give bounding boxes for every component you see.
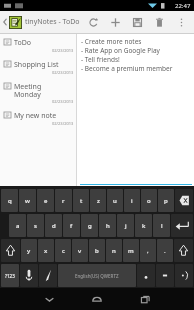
staticText: Shopping List bbox=[14, 60, 59, 70]
button[interactable]: n bbox=[106, 239, 122, 262]
staticText: a bbox=[16, 222, 20, 230]
staticText: ?123 bbox=[5, 273, 15, 279]
staticText: p bbox=[164, 197, 168, 205]
staticText: 02/23/2013 bbox=[52, 48, 74, 53]
button[interactable]: Key bbox=[174, 239, 193, 262]
staticText: s bbox=[34, 222, 37, 230]
button[interactable]: Key bbox=[137, 264, 155, 287]
staticText: l bbox=[161, 222, 163, 230]
staticText: z bbox=[97, 197, 100, 205]
button[interactable]: o bbox=[141, 189, 157, 212]
staticText: - Create more notes bbox=[81, 37, 142, 46]
staticText: y bbox=[27, 247, 31, 255]
staticText: w bbox=[25, 197, 30, 205]
staticText: c bbox=[62, 247, 65, 255]
button[interactable]: Meeting Monday bbox=[0, 78, 76, 107]
button[interactable]: w bbox=[19, 189, 36, 212]
staticText: - Tell friends! bbox=[81, 55, 120, 64]
button[interactable]: m bbox=[123, 239, 139, 262]
button[interactable]: s bbox=[27, 214, 44, 237]
staticText: - Become a premium member bbox=[81, 64, 173, 73]
staticText: tinyNotes - ToDo bbox=[25, 17, 80, 27]
button[interactable]: z bbox=[90, 189, 106, 212]
staticText: b bbox=[95, 247, 99, 255]
button[interactable]: v bbox=[72, 239, 88, 262]
button[interactable]: More options bbox=[170, 11, 192, 33]
button[interactable]: Key bbox=[39, 264, 57, 287]
staticText: e bbox=[44, 197, 48, 205]
button[interactable]: b bbox=[89, 239, 105, 262]
staticText: i bbox=[131, 197, 133, 205]
button[interactable]: Key bbox=[171, 214, 193, 237]
button[interactable]: Refresh bbox=[82, 11, 104, 33]
staticText: k bbox=[142, 222, 146, 230]
button[interactable]: Key bbox=[156, 264, 174, 287]
staticText: o bbox=[147, 197, 151, 205]
button[interactable]: Key bbox=[20, 264, 38, 287]
button[interactable]: Home bbox=[82, 288, 112, 310]
button[interactable]: ToDo bbox=[0, 34, 76, 56]
button[interactable]: ?123 bbox=[1, 264, 19, 287]
staticText: r bbox=[62, 197, 65, 205]
button[interactable]: t bbox=[73, 189, 89, 212]
staticText: My new note bbox=[14, 111, 57, 121]
button[interactable]: l bbox=[153, 214, 170, 237]
button[interactable]: Key bbox=[1, 239, 20, 262]
staticText: d bbox=[52, 222, 56, 230]
staticText: q bbox=[8, 197, 12, 205]
button[interactable]: - Create more notes bbox=[77, 34, 194, 186]
button[interactable]: d bbox=[45, 214, 62, 237]
staticText: . bbox=[164, 247, 166, 255]
button[interactable]: a bbox=[9, 214, 26, 237]
button[interactable]: Key bbox=[175, 264, 193, 287]
button[interactable]: f bbox=[63, 214, 80, 237]
staticText: Meeting Monday bbox=[14, 82, 42, 99]
staticText: English(US) QWERTZ bbox=[75, 273, 119, 279]
button[interactable]: j bbox=[117, 214, 134, 237]
button[interactable]: Save bbox=[126, 11, 148, 33]
staticText: u bbox=[113, 197, 117, 205]
button[interactable]: g bbox=[81, 214, 98, 237]
staticText: j bbox=[125, 222, 127, 230]
button[interactable]: h bbox=[99, 214, 116, 237]
staticText: n bbox=[112, 247, 116, 255]
button[interactable]: p bbox=[158, 189, 174, 212]
button[interactable]: e bbox=[37, 189, 54, 212]
staticText: 02/23/2013 bbox=[52, 121, 74, 126]
staticText: 02/23/2013 bbox=[52, 99, 74, 104]
button[interactable]: k bbox=[135, 214, 152, 237]
staticText: f bbox=[70, 222, 73, 230]
button[interactable]: , bbox=[140, 239, 156, 262]
staticText: ToDo bbox=[14, 38, 31, 48]
staticText: g bbox=[88, 222, 92, 230]
button[interactable]: Key bbox=[175, 189, 193, 212]
button[interactable]: English(US) QWERTZ bbox=[58, 264, 136, 287]
button[interactable]: c bbox=[55, 239, 71, 262]
button[interactable]: Shopping List bbox=[0, 56, 76, 78]
button[interactable]: Hide keyboard bbox=[34, 288, 64, 310]
staticText: t bbox=[80, 197, 83, 205]
button[interactable]: y bbox=[21, 239, 37, 262]
staticText: - Rate App on Google Play bbox=[81, 46, 160, 55]
button[interactable]: Delete bbox=[148, 11, 170, 33]
staticText: , bbox=[147, 247, 149, 255]
staticText: v bbox=[78, 247, 82, 255]
button[interactable]: . bbox=[157, 239, 173, 262]
button[interactable]: Recent apps bbox=[130, 288, 160, 310]
button[interactable]: Add note bbox=[104, 11, 126, 33]
staticText: x bbox=[44, 247, 48, 255]
button[interactable]: i bbox=[124, 189, 140, 212]
button[interactable]: r bbox=[55, 189, 72, 212]
button[interactable]: tinyNotes - ToDo bbox=[0, 11, 82, 33]
button[interactable]: x bbox=[38, 239, 54, 262]
button[interactable]: q bbox=[1, 189, 18, 212]
staticText: h bbox=[106, 222, 110, 230]
button[interactable]: u bbox=[107, 189, 123, 212]
staticText: m bbox=[128, 247, 134, 255]
staticText: 02/23/2013 bbox=[52, 70, 74, 75]
staticText: 22:47 bbox=[175, 2, 191, 10]
button[interactable]: My new note bbox=[0, 107, 76, 129]
